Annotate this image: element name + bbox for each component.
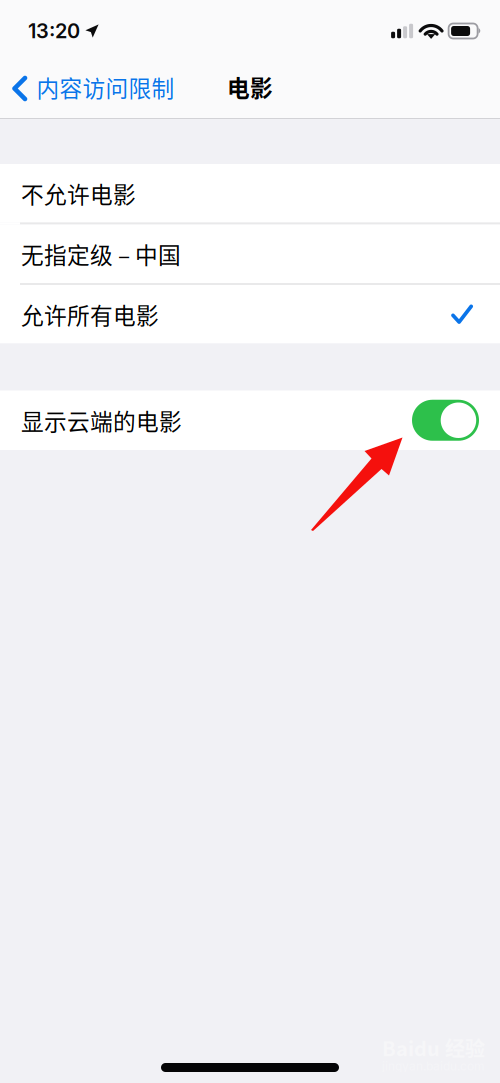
staticText: 电影 [227, 70, 273, 103]
staticText: 允许所有电影 [21, 298, 159, 331]
staticText: 内容访问限制 [36, 71, 174, 103]
staticText: 显示云端的电影 [21, 404, 182, 437]
button[interactable]: 不允许电影 [0, 164, 500, 222]
staticText: 13:20 [28, 19, 80, 43]
button[interactable]: 允许所有电影 [0, 285, 500, 343]
staticText: 无指定级 – 中国 [21, 237, 181, 270]
button[interactable]: 显示云端的电影 [412, 400, 479, 441]
button[interactable]: 无指定级 – 中国 [0, 224, 500, 283]
staticText: 不允许电影 [21, 177, 136, 210]
button[interactable]: 内容访问限制 [0, 66, 174, 114]
